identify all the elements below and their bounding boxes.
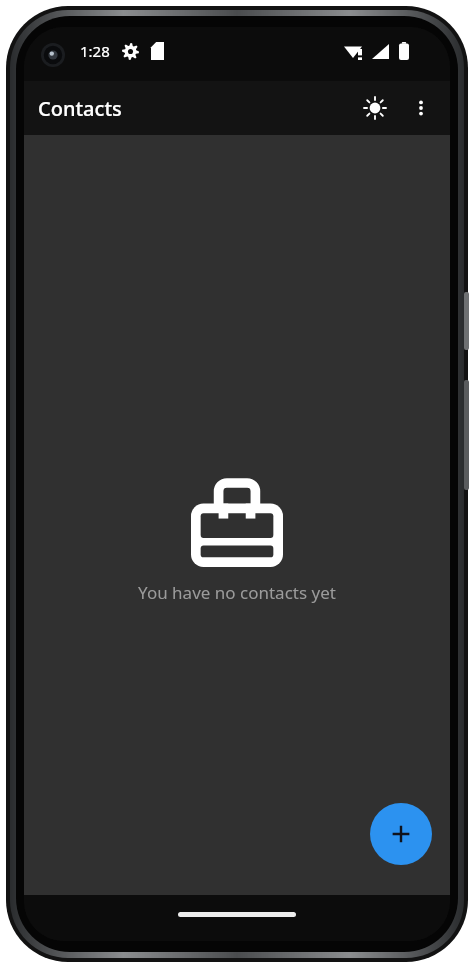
staticText: You have no contacts yet: [138, 581, 336, 604]
button[interactable]: Toggle theme: [352, 85, 398, 131]
button[interactable]: More options: [398, 85, 444, 131]
staticText: 1:28: [80, 41, 110, 61]
button[interactable]: Add contact: [370, 803, 432, 865]
staticText: Contacts: [38, 95, 122, 122]
